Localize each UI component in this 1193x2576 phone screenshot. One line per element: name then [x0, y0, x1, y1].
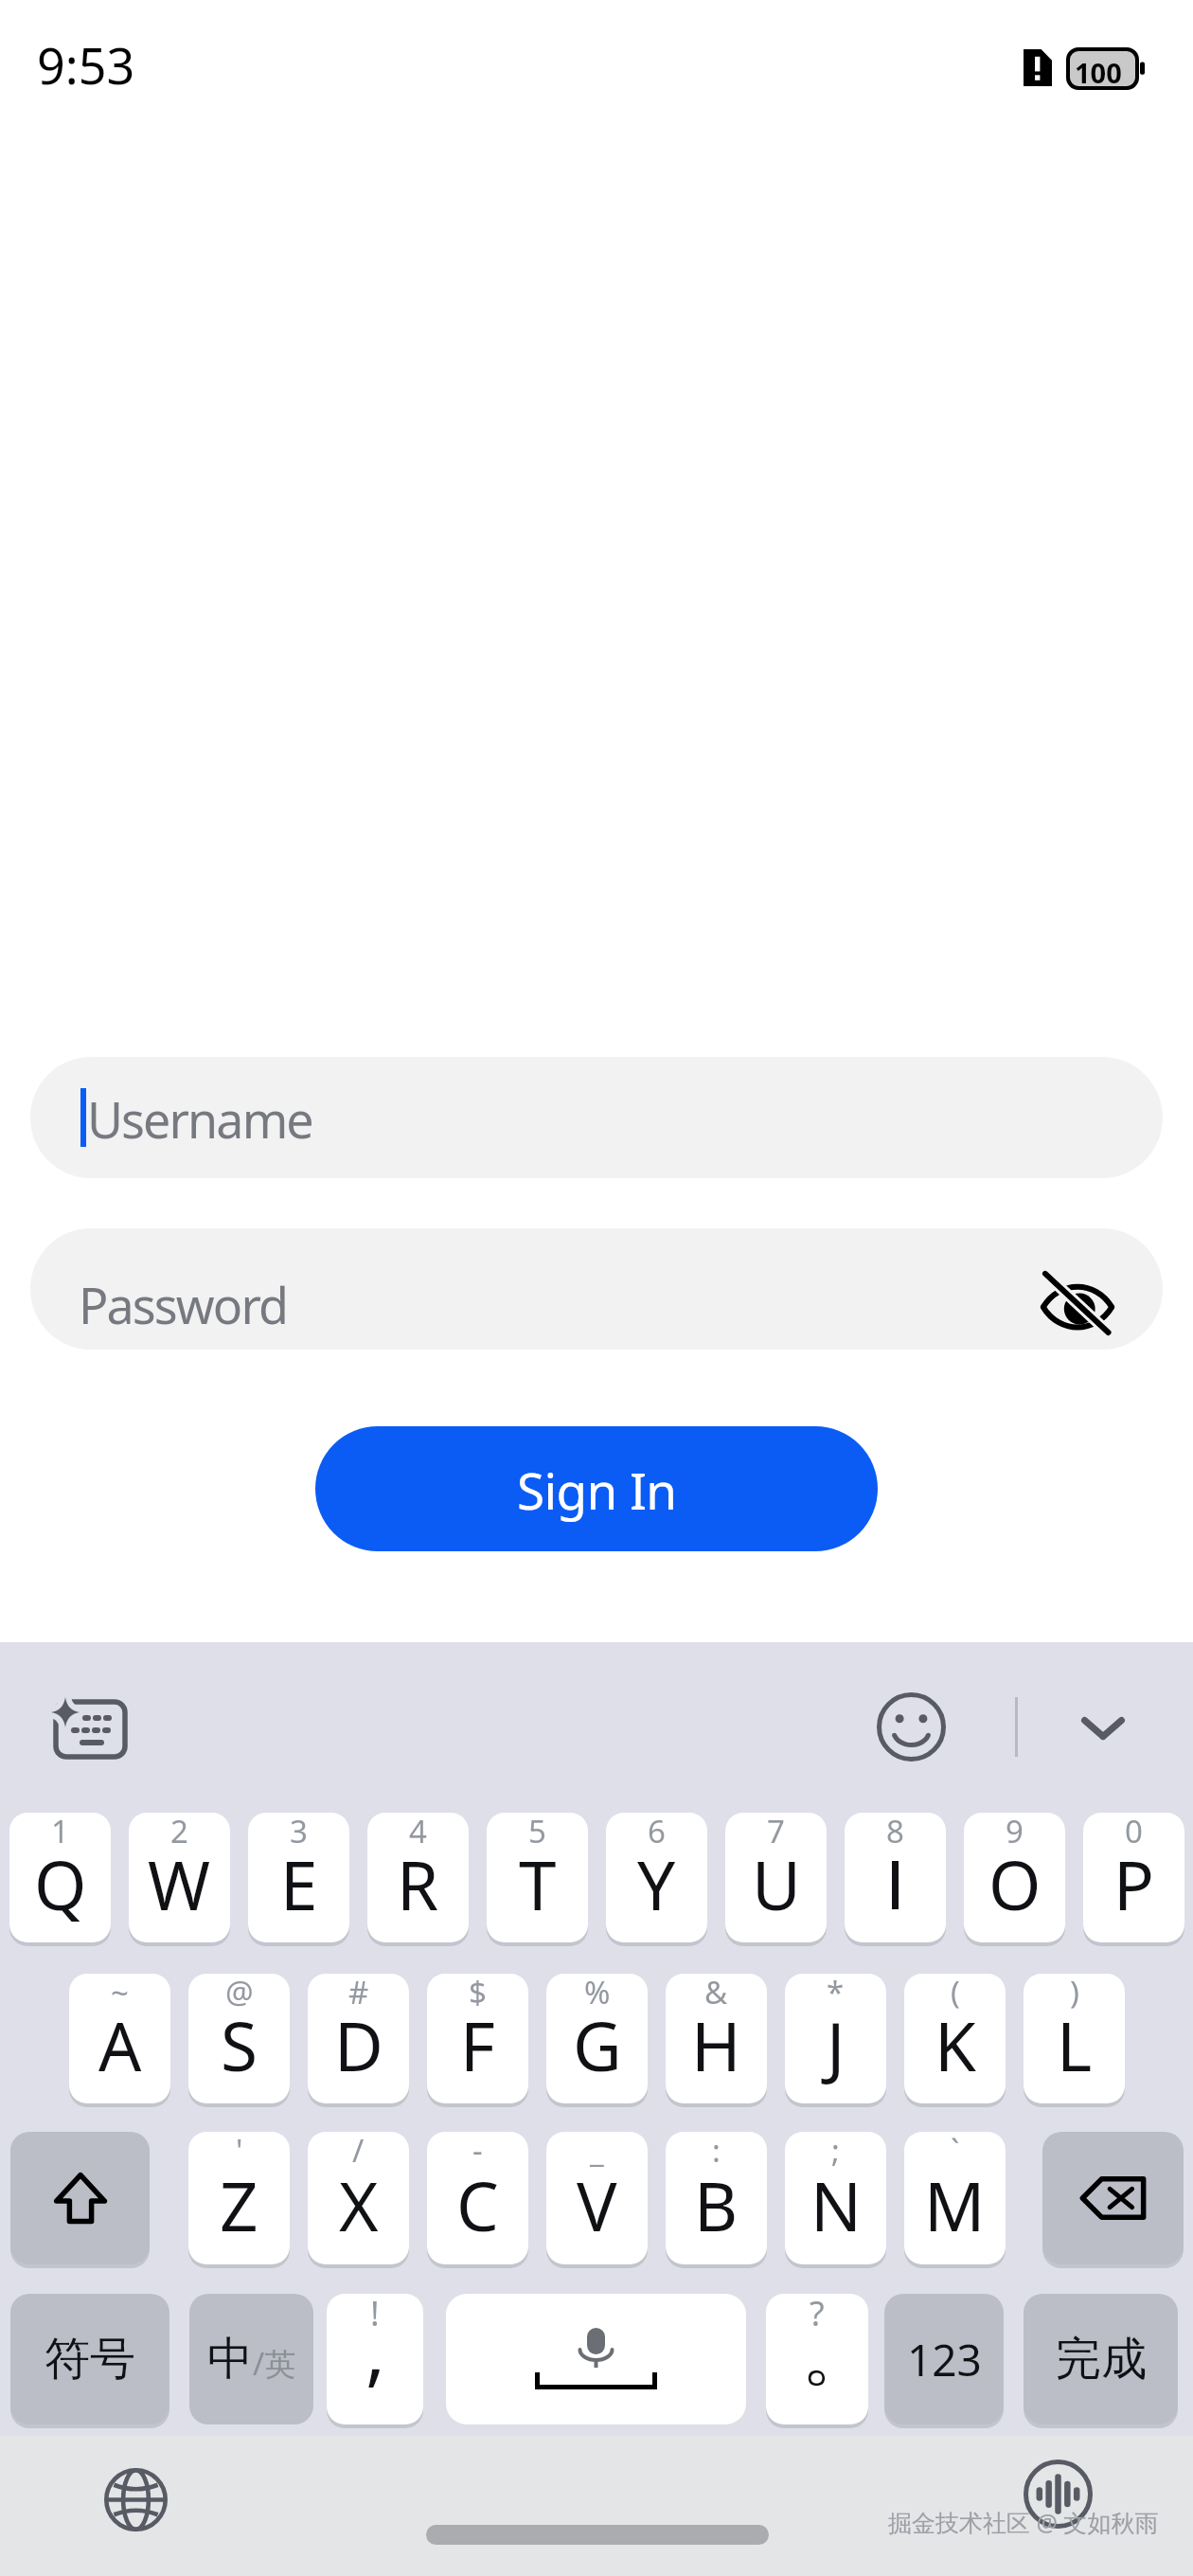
button[interactable]: 1: [9, 1813, 111, 1942]
button[interactable]: %: [546, 1974, 648, 2103]
staticText: ?: [810, 2294, 825, 2336]
staticText: 8: [886, 1813, 904, 1852]
staticText: L: [1057, 1999, 1093, 2091]
button[interactable]: Backspace: [1042, 2132, 1184, 2264]
staticText: S: [221, 1999, 258, 2091]
staticText: ;: [831, 2132, 840, 2172]
staticText: :: [712, 2132, 721, 2172]
staticText: G: [573, 1999, 622, 2091]
staticText: T: [519, 1838, 557, 1930]
button[interactable]: 4: [367, 1813, 469, 1942]
button[interactable]: 0: [1083, 1813, 1184, 1942]
staticText: $: [469, 1974, 487, 2013]
staticText: W: [148, 1838, 211, 1930]
button[interactable]: Shift: [10, 2132, 150, 2264]
staticText: !: [370, 2294, 380, 2336]
staticText: E: [280, 1838, 318, 1930]
staticText: 完成: [1056, 2331, 1147, 2388]
button[interactable]: 8: [845, 1813, 946, 1942]
staticText: Q: [34, 1838, 87, 1930]
button[interactable]: 6: [606, 1813, 707, 1942]
button[interactable]: ': [188, 2132, 290, 2264]
staticText: N: [810, 2159, 862, 2251]
staticText: V: [577, 2159, 617, 2251]
button[interactable]: 中: [189, 2294, 313, 2424]
staticText: ): [1070, 1974, 1079, 2013]
button[interactable]: 123: [884, 2294, 1004, 2424]
staticText: 5: [528, 1813, 546, 1852]
button[interactable]: 符号: [10, 2294, 169, 2424]
staticText: Password: [79, 1271, 287, 1338]
button[interactable]: @: [188, 1974, 290, 2103]
button[interactable]: 9: [964, 1813, 1065, 1942]
staticText: *: [827, 1974, 845, 2013]
staticText: _: [590, 2132, 604, 2172]
staticText: 4: [409, 1813, 427, 1852]
button[interactable]: Show password: [1025, 1250, 1130, 1350]
staticText: ,: [365, 2299, 385, 2400]
button[interactable]: 7: [725, 1813, 827, 1942]
staticText: 7: [767, 1813, 785, 1852]
button[interactable]: -: [427, 2132, 528, 2264]
staticText: M: [924, 2159, 986, 2251]
button[interactable]: Password: [30, 1228, 1163, 1350]
staticText: 100: [1075, 54, 1122, 91]
button[interactable]: (: [904, 1974, 1006, 2103]
staticText: F: [460, 1999, 495, 2091]
staticText: 。: [801, 2307, 868, 2400]
staticText: 123: [907, 2330, 982, 2389]
button[interactable]: Hide keyboard: [1050, 1675, 1156, 1781]
button[interactable]: $: [427, 1974, 528, 2103]
staticText: 符号: [45, 2331, 135, 2388]
button[interactable]: /: [308, 2132, 409, 2264]
staticText: #: [348, 1974, 369, 2013]
staticText: 9: [1006, 1813, 1024, 1852]
button[interactable]: !: [327, 2294, 423, 2424]
staticText: ': [236, 2132, 243, 2172]
staticText: P: [1113, 1838, 1154, 1930]
button[interactable]: &: [666, 1974, 767, 2103]
staticText: U: [752, 1838, 801, 1930]
button[interactable]: ?: [766, 2294, 868, 2424]
staticText: Y: [637, 1838, 676, 1930]
button[interactable]: ~: [69, 1974, 170, 2103]
staticText: Username: [87, 1085, 312, 1153]
button[interactable]: Emoji: [858, 1673, 964, 1780]
button[interactable]: *: [785, 1974, 886, 2103]
staticText: R: [397, 1838, 439, 1930]
button[interactable]: ;: [785, 2132, 886, 2264]
button[interactable]: `: [904, 2132, 1006, 2264]
staticText: &: [704, 1974, 728, 2013]
staticText: 2: [170, 1813, 188, 1852]
button[interactable]: Space: [446, 2294, 746, 2424]
staticText: ~: [111, 1974, 129, 2013]
button[interactable]: 3: [248, 1813, 349, 1942]
staticText: D: [334, 1999, 383, 2091]
staticText: 1: [51, 1813, 69, 1852]
button[interactable]: Sign In: [315, 1426, 878, 1551]
staticText: 0: [1125, 1813, 1143, 1852]
button[interactable]: _: [546, 2132, 648, 2264]
button[interactable]: AI keyboard: [14, 1685, 166, 1772]
staticText: /英: [253, 2342, 296, 2385]
staticText: Sign In: [517, 1456, 677, 1524]
button[interactable]: Voice input: [1021, 2457, 1095, 2531]
button[interactable]: Change language: [99, 2463, 171, 2535]
staticText: 9:53: [37, 31, 135, 98]
staticText: H: [691, 1999, 741, 2091]
button[interactable]: Username: [30, 1057, 1163, 1178]
button[interactable]: 5: [487, 1813, 588, 1942]
staticText: /: [352, 2132, 365, 2172]
staticText: (: [951, 1974, 960, 2013]
staticText: X: [339, 2159, 379, 2251]
button[interactable]: ): [1024, 1974, 1125, 2103]
staticText: Z: [220, 2159, 258, 2251]
button[interactable]: #: [308, 1974, 409, 2103]
staticText: O: [988, 1838, 1042, 1930]
button[interactable]: 2: [129, 1813, 230, 1942]
staticText: J: [827, 1999, 846, 2091]
button[interactable]: 完成: [1024, 2294, 1178, 2424]
staticText: -: [472, 2132, 483, 2172]
button[interactable]: :: [666, 2132, 767, 2264]
staticText: %: [584, 1974, 611, 2013]
